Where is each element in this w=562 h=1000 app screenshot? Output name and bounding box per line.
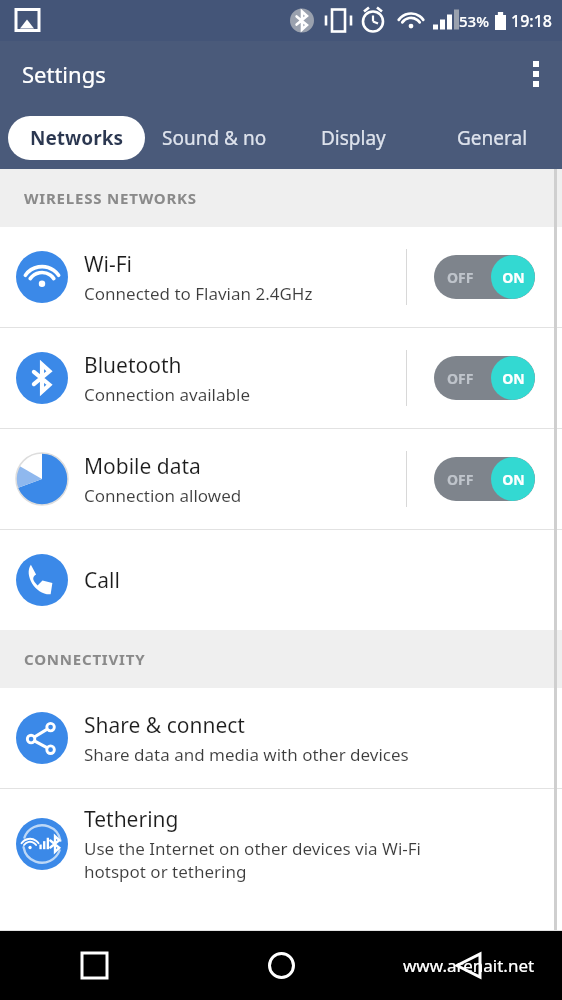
staticText: Connection available — [84, 383, 250, 406]
staticText: ON — [502, 369, 525, 388]
staticText: www.arenait.net — [403, 954, 535, 977]
button[interactable]: Share & connect — [0, 688, 562, 788]
button[interactable]: Bluetooth — [0, 328, 562, 428]
staticText: OFF — [447, 369, 474, 388]
staticText: ON — [502, 268, 525, 287]
staticText: Connection allowed — [84, 484, 242, 507]
staticText: CONNECTIVITY — [24, 649, 146, 669]
button[interactable]: Call — [0, 530, 562, 630]
button[interactable]: OFF — [407, 328, 562, 428]
staticText: General — [457, 125, 528, 151]
button[interactable]: OFF — [407, 429, 562, 529]
staticText: Sound & no — [162, 125, 267, 151]
staticText: 53% — [459, 11, 489, 31]
button[interactable]: Recent apps — [0, 931, 188, 1000]
button[interactable]: Back — [375, 931, 562, 1000]
button[interactable]: Home — [188, 931, 375, 1000]
staticText: Share data and media with other devices — [84, 743, 409, 766]
button[interactable]: General — [423, 106, 562, 169]
staticText: Use the Internet on other devices via Wi… — [84, 837, 421, 883]
staticText: ON — [502, 470, 525, 489]
button[interactable]: Mobile data — [0, 429, 562, 529]
staticText: Bluetooth — [84, 351, 182, 380]
staticText: Tethering — [84, 805, 179, 834]
staticText: Share & connect — [84, 711, 245, 740]
staticText: 19:18 — [511, 10, 552, 32]
staticText: WIRELESS NETWORKS — [24, 188, 197, 208]
button[interactable]: More options — [510, 48, 562, 100]
staticText: Settings — [22, 59, 106, 89]
button[interactable]: Networks — [8, 116, 145, 160]
staticText: Wi-Fi — [84, 250, 133, 279]
staticText: Networks — [30, 125, 123, 151]
staticText: Call — [84, 566, 120, 595]
button[interactable]: Sound & no — [145, 106, 284, 169]
staticText: Connected to Flavian 2.4GHz — [84, 282, 313, 305]
staticText: Mobile data — [84, 452, 201, 481]
button[interactable]: Tethering — [0, 789, 562, 899]
staticText: OFF — [447, 268, 474, 287]
button[interactable]: Wi-Fi — [0, 227, 562, 327]
staticText: OFF — [447, 470, 474, 489]
button[interactable]: Display — [284, 106, 423, 169]
button[interactable]: OFF — [407, 227, 562, 327]
staticText: Display — [321, 125, 386, 151]
